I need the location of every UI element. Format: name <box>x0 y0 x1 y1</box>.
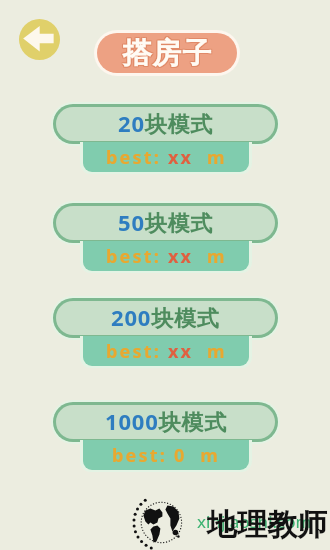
button[interactable]: 1000块模式 <box>56 405 275 439</box>
staticText: best: xx m <box>106 145 227 170</box>
staticText: 地理教师 <box>207 506 327 544</box>
staticText: best: 0 m <box>112 443 220 468</box>
button[interactable]: 200块模式 <box>56 301 275 335</box>
staticText: 搭房子 <box>122 36 212 73</box>
staticText: 50块模式 <box>118 207 214 237</box>
staticText: 搭房子 <box>121 35 211 72</box>
staticText: 搭房子 <box>123 34 213 71</box>
button[interactable]: 50块模式 <box>56 206 275 240</box>
button[interactable]: Back <box>19 19 60 60</box>
staticText: 搭房子 <box>123 36 213 73</box>
staticText: 20块模式 <box>118 108 214 138</box>
staticText: best: xx m <box>106 339 227 364</box>
staticText: 搭房子 <box>122 34 212 71</box>
staticText: 1000块模式 <box>105 406 227 436</box>
button[interactable]: 搭房子 <box>97 33 237 73</box>
button[interactable]: 20块模式 <box>56 107 275 141</box>
staticText: 搭房子 <box>121 34 211 71</box>
staticText: xinjiaoshi.com <box>197 510 312 533</box>
staticText: best: xx m <box>106 244 227 269</box>
staticText: 200块模式 <box>111 302 220 332</box>
staticText: 搭房子 <box>123 35 213 72</box>
staticText: 搭房子 <box>121 36 211 73</box>
staticText: 搭房子 <box>122 35 212 72</box>
